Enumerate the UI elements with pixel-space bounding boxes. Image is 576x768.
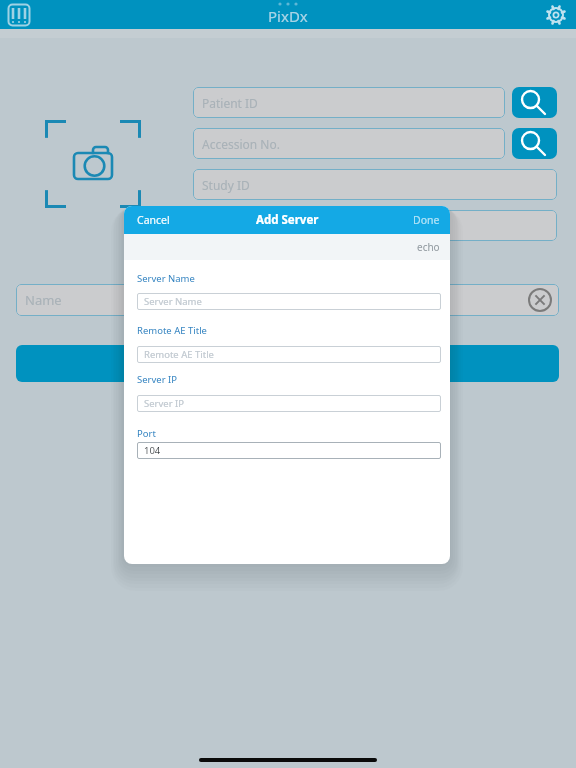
button[interactable] bbox=[544, 3, 568, 27]
button[interactable]: Patient ID bbox=[193, 87, 505, 118]
staticText: Name bbox=[25, 291, 62, 309]
button[interactable] bbox=[7, 3, 31, 27]
button[interactable]: Study ID bbox=[193, 169, 557, 200]
button[interactable] bbox=[193, 210, 557, 241]
staticText: 104 bbox=[144, 444, 161, 457]
button[interactable]: Accession No. bbox=[193, 128, 505, 159]
staticText: Patient ID bbox=[202, 95, 258, 111]
staticText: Server Name bbox=[144, 295, 202, 308]
button[interactable]: Cancel bbox=[124, 213, 170, 227]
button[interactable]: Name bbox=[16, 284, 559, 316]
staticText: Server Name bbox=[137, 272, 195, 285]
button[interactable]: Server IP bbox=[137, 395, 441, 412]
button[interactable] bbox=[512, 87, 557, 118]
button[interactable] bbox=[512, 128, 557, 159]
staticText: Remote AE Title bbox=[137, 324, 207, 337]
staticText: Remote AE Title bbox=[144, 348, 214, 361]
staticText: PixDx bbox=[268, 6, 308, 26]
button[interactable]: Server Name bbox=[137, 293, 441, 310]
staticText: Server IP bbox=[144, 397, 185, 410]
staticText: Cancel bbox=[137, 213, 170, 227]
staticText: Add Server bbox=[256, 212, 319, 228]
button[interactable]: 104 bbox=[137, 442, 441, 459]
button[interactable] bbox=[16, 345, 559, 382]
staticText: Port bbox=[137, 427, 156, 440]
staticText: Study ID bbox=[202, 177, 250, 193]
button[interactable]: Done bbox=[413, 213, 450, 227]
button[interactable]: Remote AE Title bbox=[137, 346, 441, 363]
staticText: echo bbox=[417, 240, 440, 254]
staticText: Accession No. bbox=[202, 136, 280, 152]
staticText: Done bbox=[413, 213, 440, 227]
staticText: Server IP bbox=[137, 373, 178, 386]
